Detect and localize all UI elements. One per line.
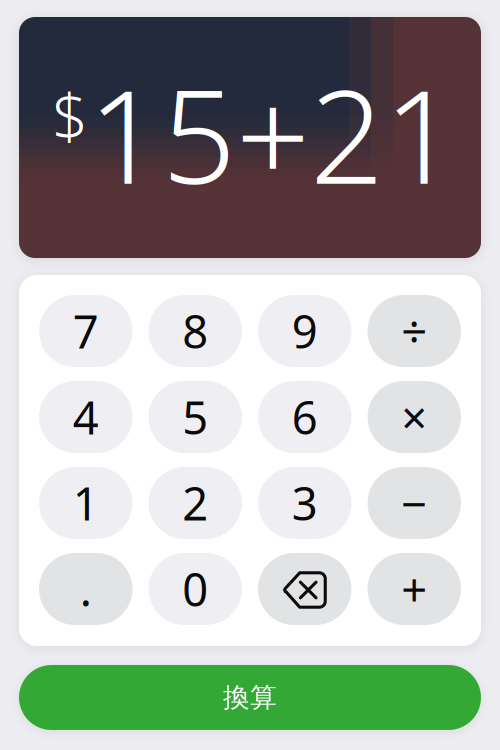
staticText: 6 bbox=[292, 387, 318, 447]
staticText: 7 bbox=[73, 301, 99, 361]
staticText: 2 bbox=[182, 473, 208, 533]
button[interactable]: Delete bbox=[258, 553, 351, 625]
staticText: 5 bbox=[182, 387, 208, 447]
staticText: 3 bbox=[292, 473, 318, 533]
button[interactable]: . bbox=[39, 553, 132, 625]
button[interactable]: 2 bbox=[148, 467, 242, 539]
button[interactable]: 6 bbox=[258, 381, 351, 453]
button[interactable]: 5 bbox=[148, 381, 242, 453]
staticText: 9 bbox=[292, 301, 318, 361]
button[interactable]: 9 bbox=[258, 295, 351, 367]
staticText: 0 bbox=[182, 559, 208, 619]
staticText: 4 bbox=[73, 387, 99, 447]
button[interactable]: 8 bbox=[148, 295, 242, 367]
button[interactable]: 1 bbox=[39, 467, 132, 539]
staticText: − bbox=[401, 473, 427, 533]
staticText: 8 bbox=[182, 301, 208, 361]
staticText: 15+21 bbox=[88, 48, 458, 219]
button[interactable]: 4 bbox=[39, 381, 132, 453]
button[interactable]: 換算 bbox=[19, 665, 481, 730]
staticText: $ bbox=[52, 74, 88, 157]
button[interactable]: 3 bbox=[258, 467, 351, 539]
button[interactable]: + bbox=[367, 553, 461, 625]
button[interactable]: 0 bbox=[148, 553, 242, 625]
button[interactable]: 7 bbox=[39, 295, 132, 367]
staticText: 換算 bbox=[223, 681, 277, 714]
button[interactable]: × bbox=[367, 381, 461, 453]
staticText: . bbox=[80, 559, 92, 619]
button[interactable]: − bbox=[367, 467, 461, 539]
staticText: ÷ bbox=[401, 301, 427, 361]
button[interactable]: ÷ bbox=[367, 295, 461, 367]
staticText: 1 bbox=[73, 473, 99, 533]
staticText: + bbox=[401, 559, 427, 619]
staticText: × bbox=[401, 387, 427, 447]
